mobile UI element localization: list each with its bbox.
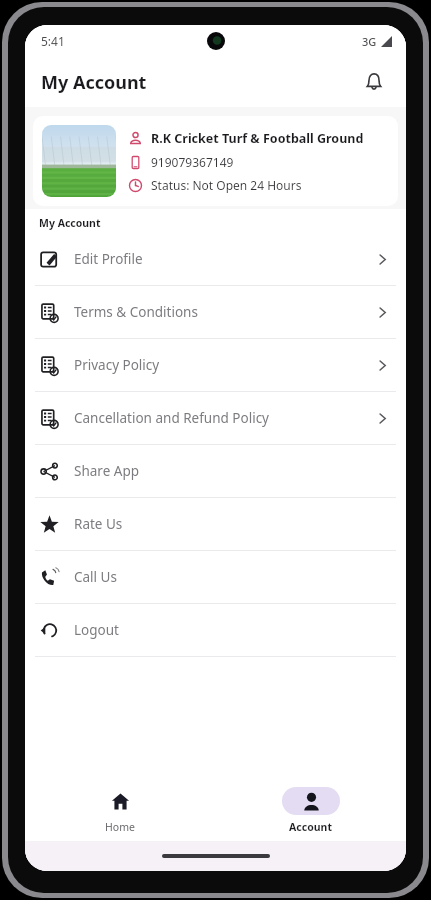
button[interactable]: Terms & Conditions [25,286,406,338]
staticText: 919079367149 [151,154,234,170]
staticText: Status: Not Open 24 Hours [151,177,302,193]
button[interactable]: Notifications [354,62,394,102]
button[interactable]: Privacy Policy [25,339,406,391]
staticText: My Account [41,70,147,95]
button[interactable]: Rate Us [25,498,406,550]
staticText: Privacy Policy [74,356,375,374]
staticText: Cancellation and Refund Policy [74,409,375,427]
staticText: Call Us [74,568,390,586]
button[interactable]: Home [25,779,215,841]
button[interactable]: Account [215,779,406,841]
staticText: 5:41 [41,33,65,49]
staticText: R.K Cricket Turf & Football Ground [151,130,364,147]
staticText: 3G [362,34,377,49]
staticText: Home [105,820,135,834]
staticText: Logout [74,621,390,639]
button[interactable]: Call Us [25,551,406,603]
button[interactable]: Cancellation and Refund Policy [25,392,406,444]
staticText: Account [289,820,332,834]
button[interactable]: Share App [25,445,406,497]
staticText: Rate Us [74,515,390,533]
button[interactable]: R.K Cricket Turf & Football Ground [33,116,398,206]
button[interactable]: Edit Profile [25,233,406,285]
staticText: Terms & Conditions [74,303,375,321]
button[interactable]: Logout [25,604,406,656]
staticText: Share App [74,462,390,480]
staticText: Edit Profile [74,250,375,268]
staticText: My Account [39,216,101,230]
